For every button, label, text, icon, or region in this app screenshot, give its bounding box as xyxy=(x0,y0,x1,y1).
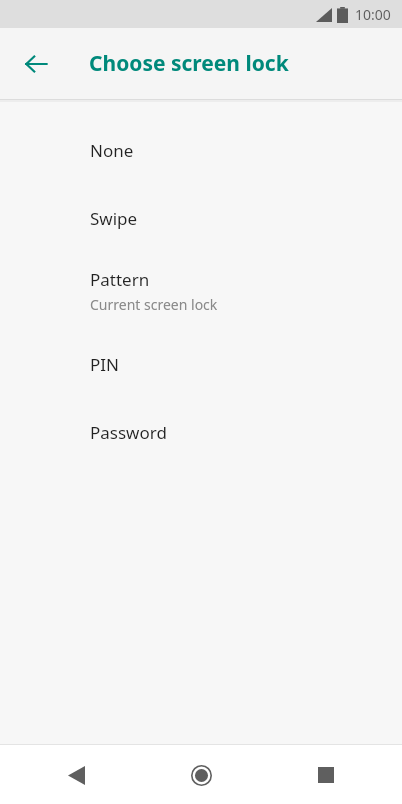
staticText: PIN xyxy=(90,353,119,376)
staticText: 10:00 xyxy=(355,5,391,24)
button[interactable]: None xyxy=(0,116,402,184)
button[interactable]: Back xyxy=(10,38,62,90)
button[interactable]: Pattern xyxy=(0,252,402,330)
staticText: Password xyxy=(90,421,167,444)
button[interactable]: Swipe xyxy=(0,184,402,252)
button[interactable]: Back xyxy=(50,749,102,801)
button[interactable]: PIN xyxy=(0,330,402,398)
staticText: Pattern xyxy=(90,268,150,291)
staticText: Current screen lock xyxy=(90,295,218,314)
staticText: Choose screen lock xyxy=(89,49,289,78)
staticText: None xyxy=(90,139,134,162)
staticText: Swipe xyxy=(90,207,138,230)
button[interactable]: Recent apps xyxy=(300,749,352,801)
button[interactable]: Password xyxy=(0,398,402,466)
button[interactable]: Home xyxy=(175,749,227,801)
